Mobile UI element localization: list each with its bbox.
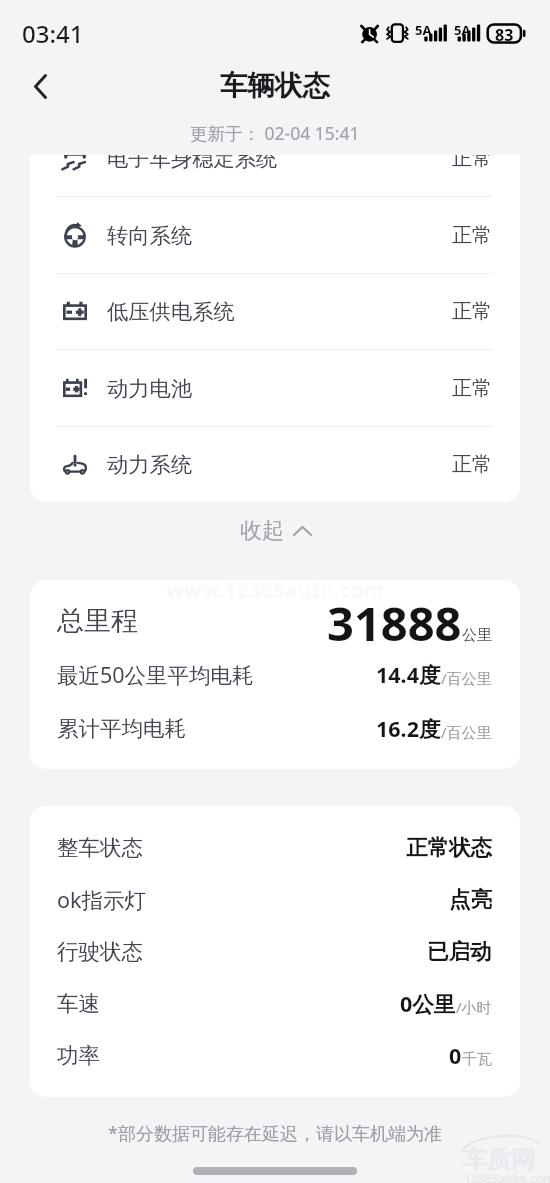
- staticText: 16.2度: [376, 714, 441, 743]
- staticText: 12365auto.com: [464, 1170, 550, 1183]
- staticText: 车辆状态: [220, 69, 330, 104]
- button[interactable]: 低压供电系统: [30, 273, 520, 349]
- staticText: 14.4度: [376, 660, 441, 689]
- staticText: /百公里: [441, 668, 492, 688]
- staticText: 正常: [452, 452, 492, 477]
- staticText: 收起: [240, 517, 284, 545]
- staticText: 正常: [452, 299, 492, 324]
- staticText: /小时: [456, 997, 492, 1017]
- button[interactable]: 转向系统: [30, 197, 520, 273]
- staticText: 车速: [57, 990, 100, 1017]
- staticText: 正常状态: [406, 834, 492, 861]
- staticText: 点亮: [449, 886, 492, 913]
- staticText: 整车状态: [57, 834, 143, 861]
- staticText: 5A: [454, 21, 471, 39]
- staticText: ok指示灯: [57, 885, 146, 914]
- staticText: 正常: [452, 376, 492, 401]
- staticText: 动力电池: [107, 375, 193, 402]
- staticText: 动力系统: [107, 451, 193, 478]
- staticText: 0公里: [400, 989, 456, 1018]
- staticText: 0: [449, 1041, 462, 1070]
- staticText: 低压供电系统: [107, 298, 235, 325]
- staticText: 转向系统: [107, 222, 193, 249]
- staticText: 83: [495, 24, 514, 46]
- staticText: 累计平均电耗: [57, 715, 186, 742]
- staticText: 最近50公里平均电耗: [57, 660, 254, 689]
- staticText: 已启动: [427, 938, 492, 965]
- button[interactable]: 动力电池: [30, 350, 520, 426]
- button[interactable]: 动力系统: [30, 426, 520, 502]
- button[interactable]: Back: [18, 66, 58, 106]
- staticText: 03:41: [22, 17, 84, 50]
- staticText: 正常: [452, 155, 492, 171]
- staticText: 电子车身稳定系统: [107, 155, 278, 172]
- staticText: 功率: [57, 1042, 100, 1069]
- button[interactable]: 电子车身稳定系统: [30, 155, 520, 196]
- staticText: 正常: [452, 223, 492, 248]
- staticText: 行驶状态: [57, 938, 143, 965]
- staticText: 总里程: [57, 604, 138, 638]
- staticText: *部分数据可能存在延迟，请以车机端为准: [108, 1121, 442, 1146]
- button[interactable]: 收起: [216, 507, 335, 555]
- staticText: 31888: [327, 591, 462, 651]
- staticText: 千瓦: [462, 1050, 492, 1069]
- staticText: 车质网: [463, 1145, 535, 1175]
- staticText: 更新于： 02-04 15:41: [190, 121, 360, 145]
- staticText: 公里: [462, 626, 492, 645]
- staticText: /百公里: [441, 722, 492, 742]
- staticText: 5A: [415, 21, 432, 39]
